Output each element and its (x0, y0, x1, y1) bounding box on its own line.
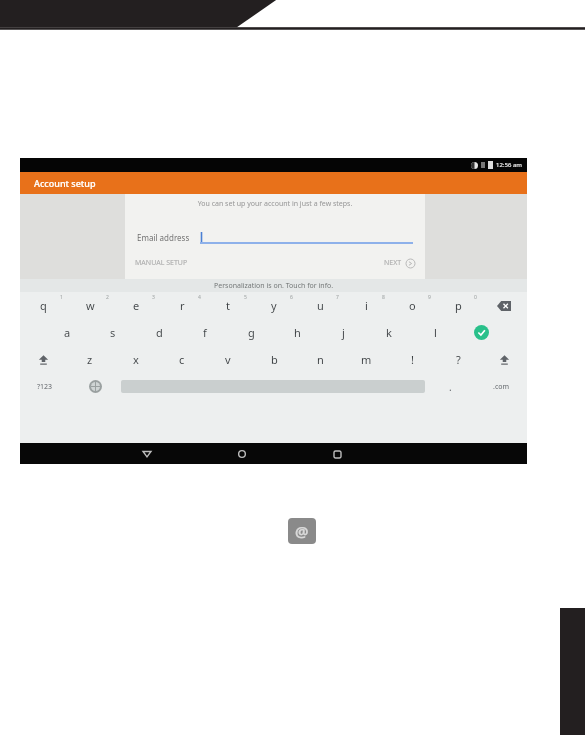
button[interactable]: Shift (20, 346, 67, 373)
button[interactable]: f (182, 319, 228, 346)
button[interactable]: Account setup (20, 172, 527, 194)
staticText: MANUAL SETUP (135, 258, 188, 268)
staticText: w (86, 298, 95, 313)
button[interactable]: x (113, 346, 159, 373)
staticText: .com (493, 382, 510, 392)
staticText: l (434, 325, 437, 340)
staticText: @ (295, 521, 309, 541)
staticText: 5 (244, 294, 247, 301)
button[interactable]: At sign key (288, 518, 316, 544)
staticText: j (342, 325, 345, 340)
button[interactable]: s (90, 319, 136, 346)
staticText: r (180, 298, 185, 313)
button[interactable]: o (389, 292, 435, 319)
staticText: a (64, 325, 71, 340)
staticText: 9 (428, 294, 431, 301)
staticText: 2 (106, 294, 109, 301)
button[interactable]: p (435, 292, 481, 319)
button[interactable]: y (251, 292, 297, 319)
staticText: p (455, 298, 462, 313)
button[interactable]: Personalization is on. Touch for info. (20, 279, 527, 292)
staticText: . (449, 380, 452, 394)
staticText: c (179, 352, 185, 367)
button[interactable]: d (136, 319, 182, 346)
staticText: e (133, 298, 140, 313)
button[interactable]: MANUAL SETUP (133, 256, 190, 270)
staticText: ! (411, 352, 414, 367)
button[interactable]: t (205, 292, 251, 319)
staticText: m (361, 352, 372, 367)
button[interactable]: Home (232, 444, 252, 464)
button[interactable] (200, 231, 413, 244)
button[interactable]: Back (137, 444, 157, 464)
staticText: n (317, 352, 324, 367)
button[interactable]: e (113, 292, 159, 319)
staticText: You can set up your account in just a fe… (125, 199, 425, 209)
staticText: o (409, 298, 416, 313)
button[interactable]: .com (476, 373, 527, 400)
staticText: Account setup (34, 177, 96, 189)
staticText: i (365, 298, 368, 313)
staticText: 0 (474, 294, 477, 301)
staticText: 1 (60, 294, 63, 301)
button[interactable]: z (67, 346, 113, 373)
button[interactable]: ?123 (20, 373, 70, 400)
button[interactable]: Done (458, 319, 504, 346)
button[interactable]: . (425, 373, 476, 400)
button[interactable]: u (297, 292, 343, 319)
staticText: q (40, 298, 47, 313)
staticText: 7 (336, 294, 339, 301)
staticText: t (226, 298, 230, 313)
staticText: Email address (137, 232, 190, 243)
button[interactable]: q (20, 292, 67, 319)
staticText: g (248, 325, 255, 340)
staticText: h (294, 325, 301, 340)
staticText: d (156, 325, 163, 340)
staticText: f (203, 325, 207, 340)
staticText: b (271, 352, 278, 367)
button[interactable]: m (343, 346, 389, 373)
staticText: k (386, 325, 392, 340)
staticText: y (271, 298, 277, 313)
staticText: 12:56 am (496, 161, 522, 169)
button[interactable]: a (44, 319, 90, 346)
staticText: ? (456, 352, 461, 367)
button[interactable]: l (412, 319, 458, 346)
button[interactable]: b (251, 346, 297, 373)
button[interactable]: g (228, 319, 274, 346)
button[interactable]: Backspace (481, 292, 527, 319)
button[interactable]: c (159, 346, 205, 373)
button[interactable]: NEXT (382, 256, 417, 270)
staticText: 8 (382, 294, 385, 301)
staticText: u (317, 298, 324, 313)
button[interactable]: Change keyboard language (70, 373, 121, 400)
staticText: 4 (198, 294, 201, 301)
staticText: x (133, 352, 139, 367)
button[interactable]: k (366, 319, 412, 346)
staticText: z (87, 352, 93, 367)
button[interactable]: n (297, 346, 343, 373)
button[interactable]: Recent apps (327, 444, 347, 464)
button[interactable]: j (320, 319, 366, 346)
staticText: Personalization is on. Touch for info. (214, 281, 334, 291)
staticText: 6 (290, 294, 293, 301)
button[interactable]: ! (389, 346, 435, 373)
staticText: s (110, 325, 116, 340)
staticText: 3 (152, 294, 155, 301)
button[interactable]: ? (435, 346, 481, 373)
button[interactable]: v (205, 346, 251, 373)
staticText: NEXT (384, 258, 402, 268)
button[interactable]: i (343, 292, 389, 319)
button[interactable]: r (159, 292, 205, 319)
staticText: v (225, 352, 231, 367)
button[interactable]: Shift (481, 346, 527, 373)
button[interactable]: w (67, 292, 113, 319)
button[interactable]: h (274, 319, 320, 346)
staticText: ?123 (37, 382, 53, 392)
